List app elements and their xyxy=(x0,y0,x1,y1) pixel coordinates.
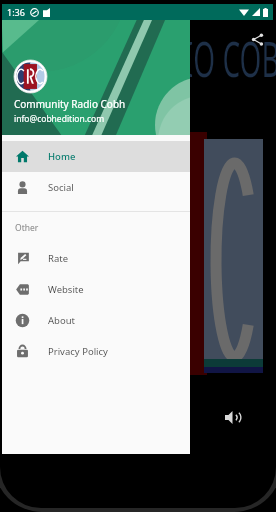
staticText: 1:36 xyxy=(7,6,25,18)
staticText: Community Radio Cobh xyxy=(14,97,126,111)
staticText: Rate xyxy=(48,252,69,265)
staticText: RADIO COBH xyxy=(128,24,276,92)
staticText: Social xyxy=(48,181,74,194)
button[interactable]: Website xyxy=(2,274,190,305)
button[interactable]: Privacy Policy xyxy=(2,336,190,367)
staticText: Website xyxy=(48,283,84,296)
button[interactable]: About xyxy=(2,305,190,336)
button[interactable]: Social xyxy=(2,172,190,203)
button[interactable]: Home xyxy=(2,141,190,172)
button[interactable]: Share xyxy=(248,30,266,48)
staticText: Home xyxy=(48,150,76,163)
button[interactable]: Volume xyxy=(222,407,242,427)
staticText: info@cobhedition.com xyxy=(14,113,105,125)
staticText: About xyxy=(48,314,75,327)
staticText: Other xyxy=(15,222,39,234)
button[interactable]: Rate xyxy=(2,243,190,274)
staticText: Privacy Policy xyxy=(48,345,108,358)
